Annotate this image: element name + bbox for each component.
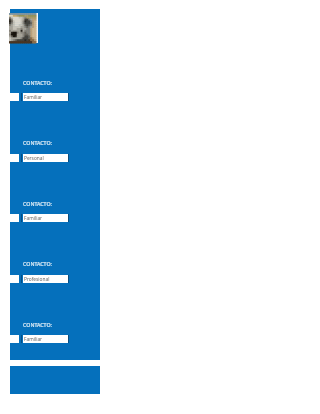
staticText: CONTACTO: [23, 139, 53, 146]
button[interactable]: CONTACTO: [23, 321, 53, 329]
staticText: CONTACTO: [23, 260, 53, 267]
staticText: Personal [24, 155, 44, 162]
button[interactable]: Familiar [23, 93, 68, 101]
button[interactable]: Profesional [23, 275, 68, 283]
other: Koala photo [9, 13, 36, 43]
button[interactable]: Familiar [23, 335, 68, 343]
staticText: CONTACTO: [23, 200, 53, 207]
staticText: Familiar [24, 215, 43, 222]
staticText: Profesional [24, 276, 50, 283]
staticText: CONTACTO: [23, 79, 53, 86]
staticText: Familiar [24, 336, 43, 343]
button[interactable]: CONTACTO: [23, 260, 53, 268]
button[interactable]: CONTACTO: [23, 79, 53, 87]
staticText: CONTACTO: [23, 321, 53, 328]
button[interactable]: Personal [23, 154, 68, 162]
button[interactable]: CONTACTO: [23, 139, 53, 147]
button[interactable]: Familiar [23, 214, 68, 222]
button[interactable]: CONTACTO: [23, 200, 53, 208]
staticText: Familiar [24, 94, 43, 101]
